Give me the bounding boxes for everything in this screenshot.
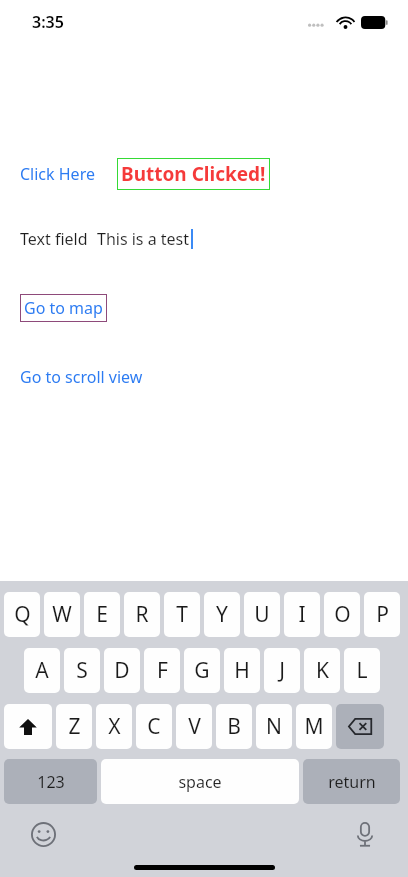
button[interactable]: B (216, 704, 252, 749)
staticText: N (266, 712, 282, 741)
staticText: Click Here (20, 163, 95, 185)
button[interactable]: R (124, 592, 160, 637)
button[interactable]: space (101, 759, 299, 804)
button[interactable]: return (303, 759, 400, 804)
staticText: This is a test (97, 228, 190, 250)
staticText: R (135, 600, 149, 629)
staticText: H (234, 656, 250, 685)
button[interactable]: H (224, 648, 260, 693)
button[interactable]: D (104, 648, 140, 693)
staticText: C (147, 712, 161, 741)
button[interactable]: Go to scroll view (20, 366, 143, 388)
button[interactable]: Q (4, 592, 40, 637)
button[interactable]: O (324, 592, 360, 637)
staticText: W (52, 600, 72, 629)
staticText: G (194, 656, 210, 685)
button[interactable]: G (184, 648, 220, 693)
staticText: Button Clicked! (121, 161, 266, 187)
staticText: M (304, 712, 324, 741)
staticText: U (254, 600, 270, 629)
staticText: S (76, 656, 88, 685)
staticText: E (96, 600, 108, 629)
button[interactable]: A (24, 648, 60, 693)
staticText: B (227, 712, 241, 741)
staticText: F (157, 656, 168, 685)
button[interactable]: Y (204, 592, 240, 637)
button[interactable]: Backspace (336, 704, 384, 749)
staticText: Go to scroll view (20, 366, 143, 388)
staticText: O (334, 600, 351, 629)
button[interactable]: T (164, 592, 200, 637)
button[interactable]: Go to map (20, 294, 107, 322)
button[interactable]: N (256, 704, 292, 749)
button[interactable]: W (44, 592, 80, 637)
button[interactable]: S (64, 648, 100, 693)
button[interactable]: Click Here (20, 163, 95, 185)
button[interactable]: J (264, 648, 300, 693)
button[interactable]: M (296, 704, 332, 749)
staticText: K (316, 656, 329, 685)
button[interactable]: F (144, 648, 180, 693)
button[interactable]: C (136, 704, 172, 749)
button[interactable]: Z (56, 704, 92, 749)
staticText: return (328, 771, 376, 793)
staticText: space (178, 771, 222, 793)
button[interactable]: K (304, 648, 340, 693)
staticText: X (108, 712, 121, 741)
staticText: Y (216, 600, 228, 629)
staticText: Q (14, 600, 31, 629)
button[interactable]: Emoji (26, 817, 60, 851)
button[interactable]: 123 (4, 759, 97, 804)
staticText: I (298, 600, 306, 629)
button[interactable]: V (176, 704, 212, 749)
staticText: P (376, 600, 389, 629)
staticText: 123 (37, 771, 65, 793)
staticText: L (356, 656, 368, 685)
button[interactable]: Shift (4, 704, 52, 749)
button[interactable]: U (244, 592, 280, 637)
staticText: D (114, 656, 130, 685)
staticText: Go to map (24, 297, 103, 319)
staticText: T (176, 600, 188, 629)
staticText: J (279, 656, 285, 685)
button[interactable]: E (84, 592, 120, 637)
staticText: A (35, 656, 49, 685)
staticText: V (188, 712, 201, 741)
button[interactable]: I (284, 592, 320, 637)
staticText: 3:35 (32, 11, 64, 33)
staticText: Z (68, 712, 81, 741)
button[interactable]: P (364, 592, 400, 637)
button[interactable]: X (96, 704, 132, 749)
button[interactable]: This is a test (97, 228, 192, 250)
button[interactable]: Dictation (348, 817, 382, 851)
staticText: Text field (20, 228, 88, 250)
button[interactable]: L (344, 648, 380, 693)
